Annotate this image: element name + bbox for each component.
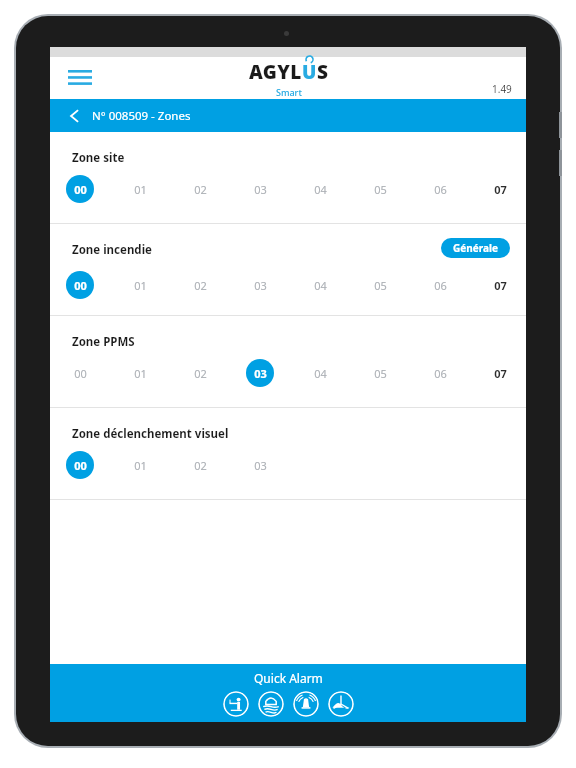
button[interactable]: Flood alert bbox=[258, 691, 284, 717]
button[interactable]: 03 bbox=[246, 359, 274, 387]
staticText: S bbox=[317, 59, 328, 85]
button[interactable]: 03 bbox=[246, 451, 274, 479]
staticText: 00 bbox=[74, 182, 87, 197]
staticText: 07 bbox=[494, 366, 507, 381]
staticText: 05 bbox=[374, 182, 387, 197]
staticText: 1.49 bbox=[492, 82, 512, 96]
button[interactable]: 03 bbox=[246, 175, 274, 203]
staticText: 04 bbox=[314, 182, 327, 197]
button[interactable]: 02 bbox=[186, 271, 214, 299]
button[interactable]: 00 bbox=[66, 359, 94, 387]
button[interactable]: 07 bbox=[486, 359, 514, 387]
button[interactable]: Menu bbox=[62, 60, 98, 96]
button[interactable]: 00 bbox=[66, 451, 94, 479]
button[interactable]: 02 bbox=[186, 359, 214, 387]
staticText: 05 bbox=[374, 278, 387, 293]
button[interactable]: 04 bbox=[306, 359, 334, 387]
staticText: Générale bbox=[453, 241, 498, 255]
button[interactable]: 04 bbox=[306, 175, 334, 203]
staticText: 03 bbox=[254, 182, 267, 197]
staticText: AGYL bbox=[249, 59, 302, 85]
staticText: 06 bbox=[434, 278, 447, 293]
button[interactable]: 00 bbox=[66, 271, 94, 299]
button[interactable]: Back bbox=[50, 99, 526, 132]
staticText: 02 bbox=[194, 458, 207, 473]
staticText: Zone site bbox=[72, 150, 125, 166]
staticText: Zone déclenchement visuel bbox=[72, 426, 229, 442]
staticText: 07 bbox=[494, 182, 507, 197]
other: Back bbox=[64, 105, 86, 127]
button[interactable]: 05 bbox=[366, 175, 394, 203]
staticText: 01 bbox=[134, 182, 147, 197]
staticText: 06 bbox=[434, 182, 447, 197]
staticText: 03 bbox=[254, 278, 267, 293]
staticText: 01 bbox=[134, 366, 147, 381]
staticText: 04 bbox=[314, 366, 327, 381]
button[interactable]: 06 bbox=[426, 359, 454, 387]
button[interactable]: 02 bbox=[186, 175, 214, 203]
button[interactable]: 05 bbox=[366, 359, 394, 387]
staticText: 00 bbox=[74, 458, 87, 473]
staticText: N° 008509 - Zones bbox=[92, 108, 191, 124]
button[interactable]: 06 bbox=[426, 271, 454, 299]
staticText: 02 bbox=[194, 278, 207, 293]
button[interactable]: 07 bbox=[486, 175, 514, 203]
staticText: 03 bbox=[254, 366, 267, 381]
staticText: 07 bbox=[494, 278, 507, 293]
staticText: Zone PPMS bbox=[72, 334, 135, 350]
staticText: U bbox=[302, 59, 317, 85]
staticText: 02 bbox=[194, 366, 207, 381]
button[interactable]: 01 bbox=[126, 451, 154, 479]
button[interactable]: 01 bbox=[126, 271, 154, 299]
button[interactable]: 05 bbox=[366, 271, 394, 299]
staticText: 01 bbox=[134, 458, 147, 473]
button[interactable]: Générale bbox=[441, 238, 510, 258]
staticText: 00 bbox=[74, 366, 87, 381]
staticText: 01 bbox=[134, 278, 147, 293]
staticText: Zone incendie bbox=[72, 242, 152, 258]
staticText: 02 bbox=[194, 182, 207, 197]
button[interactable]: 06 bbox=[426, 175, 454, 203]
staticText: 03 bbox=[254, 458, 267, 473]
button[interactable]: 00 bbox=[66, 175, 94, 203]
button[interactable]: 07 bbox=[486, 271, 514, 299]
button[interactable]: 04 bbox=[306, 271, 334, 299]
button[interactable]: 01 bbox=[126, 175, 154, 203]
staticText: Smart bbox=[276, 86, 302, 98]
staticText: 00 bbox=[74, 278, 87, 293]
button[interactable]: 03 bbox=[246, 271, 274, 299]
staticText: 05 bbox=[374, 366, 387, 381]
staticText: 06 bbox=[434, 366, 447, 381]
button[interactable]: 01 bbox=[126, 359, 154, 387]
button[interactable]: Fire alarm bell bbox=[293, 691, 319, 717]
staticText: 04 bbox=[314, 278, 327, 293]
button[interactable]: Chemical alert bbox=[328, 691, 354, 717]
button[interactable]: Quick Alarm bbox=[254, 670, 323, 686]
button[interactable]: 02 bbox=[186, 451, 214, 479]
button[interactable]: Intrusion alert bbox=[223, 691, 249, 717]
